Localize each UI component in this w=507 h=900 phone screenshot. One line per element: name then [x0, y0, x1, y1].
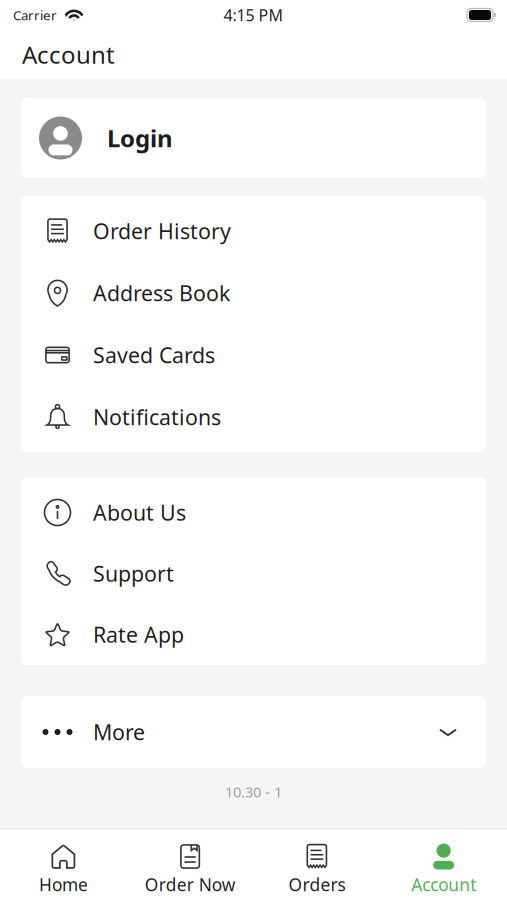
staticText: 10.30 - 1 — [225, 782, 282, 801]
staticText: Home — [39, 873, 88, 896]
button[interactable]: Home — [0, 829, 127, 900]
button[interactable]: Notifications — [21, 386, 486, 448]
staticText: Carrier — [13, 6, 57, 24]
staticText: Support — [93, 559, 174, 588]
button[interactable]: Support — [21, 543, 486, 604]
staticText: Rate App — [93, 620, 184, 649]
button[interactable]: Saved Cards — [21, 324, 486, 386]
button[interactable]: Order History — [21, 200, 486, 262]
staticText: Saved Cards — [93, 341, 215, 369]
button[interactable]: Account — [380, 829, 507, 900]
staticText: Order Now — [145, 873, 236, 896]
staticText: More — [93, 718, 145, 746]
staticText: Login — [107, 122, 173, 154]
button[interactable]: Orders — [253, 829, 380, 900]
staticText: Order History — [93, 217, 231, 245]
staticText: Orders — [288, 873, 345, 896]
button[interactable]: More — [21, 696, 486, 768]
button[interactable]: About Us — [21, 482, 486, 543]
button[interactable]: Order Now — [127, 829, 254, 900]
button[interactable]: Rate App — [21, 604, 486, 665]
staticText: 4:15 PM — [223, 4, 283, 26]
staticText: Account — [411, 873, 476, 896]
staticText: Account — [22, 39, 115, 70]
staticText: About Us — [93, 498, 186, 527]
staticText: Notifications — [93, 403, 221, 431]
staticText: Address Book — [93, 279, 230, 307]
button[interactable]: Login — [21, 98, 486, 178]
button[interactable]: Address Book — [21, 262, 486, 324]
